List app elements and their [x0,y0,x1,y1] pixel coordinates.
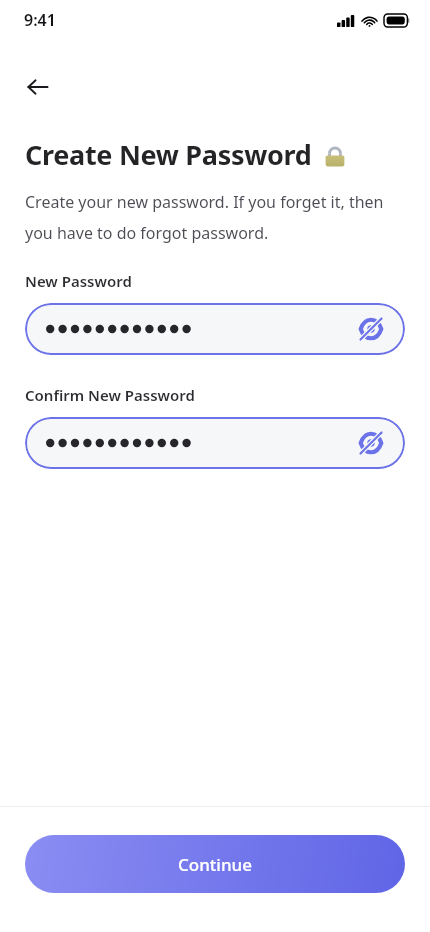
staticText: Create New Password [25,136,312,173]
button[interactable]: Continue [25,835,405,893]
button[interactable]: Hide password [355,427,387,459]
staticText: Continue [178,853,253,876]
button[interactable]: Hide password [25,303,405,355]
staticText: New Password [25,271,132,291]
button[interactable]: Hide password [25,417,405,469]
button[interactable]: Back [20,69,56,105]
staticText: Create your new password. If you forget … [25,191,405,243]
staticText: 9:41 [24,9,56,31]
button[interactable]: Hide password [355,313,387,345]
staticText: Confirm New Password [25,385,195,405]
